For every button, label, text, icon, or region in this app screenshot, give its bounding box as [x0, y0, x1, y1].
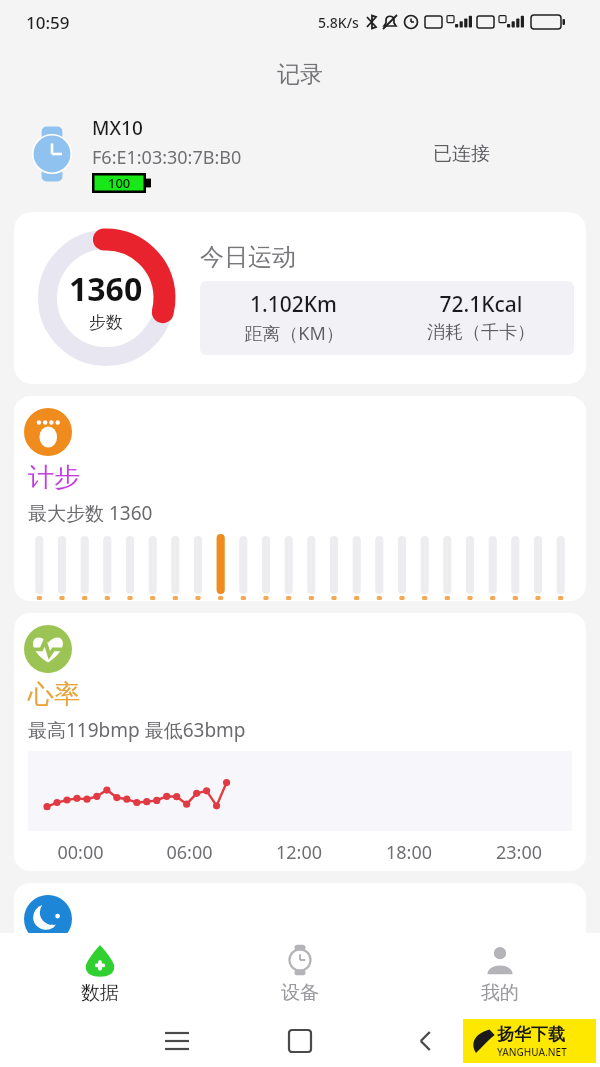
staticText: 100 [108, 174, 131, 192]
staticText: 18:00 [354, 840, 464, 865]
staticText: 我的 [481, 981, 519, 1005]
button[interactable]: 心率 [14, 613, 586, 871]
staticText: MX10 [92, 115, 143, 141]
staticText: 最大步数 1360 [28, 500, 153, 526]
staticText: 心率 [28, 678, 80, 711]
staticText: YANGHUA.NET [497, 1045, 567, 1059]
staticText: 计步 [28, 461, 80, 494]
button[interactable]: 计步 [14, 396, 586, 601]
other: 数据 [83, 943, 117, 977]
button[interactable]: 设备 [200, 935, 400, 1013]
other: 设备 [283, 943, 317, 977]
staticText: 72.1Kcal [439, 290, 523, 319]
staticText: 1360 [69, 267, 143, 311]
staticText: 设备 [281, 981, 319, 1005]
staticText: 已连接 [433, 142, 490, 166]
staticText: 距离（KM） [244, 321, 344, 346]
staticText: 06:00 [135, 840, 244, 865]
staticText: 今日运动 [200, 242, 296, 272]
staticText: 10:59 [26, 11, 70, 34]
staticText: 扬华下载 [497, 1024, 565, 1045]
staticText: 记录 [277, 60, 323, 89]
staticText: 数据 [81, 981, 119, 1005]
staticText: 5.8K/s [318, 13, 359, 32]
staticText: 步数 [89, 312, 123, 333]
button[interactable]: 1360 [14, 212, 586, 384]
button[interactable] [14, 883, 586, 1003]
button[interactable]: 我的 [400, 935, 600, 1013]
button[interactable]: MX10 [0, 104, 600, 204]
staticText: 消耗（千卡） [427, 321, 535, 344]
staticText: 12:00 [244, 840, 354, 865]
staticText: 最高119bmp 最低63bmp [28, 717, 246, 743]
staticText: F6:E1:03:30:7B:B0 [92, 145, 242, 170]
staticText: 00:00 [26, 840, 135, 865]
button[interactable]: 数据 [0, 935, 200, 1013]
staticText: 1.102Km [250, 290, 337, 319]
staticText: 23:00 [464, 840, 574, 865]
other: 我的 [483, 943, 517, 977]
